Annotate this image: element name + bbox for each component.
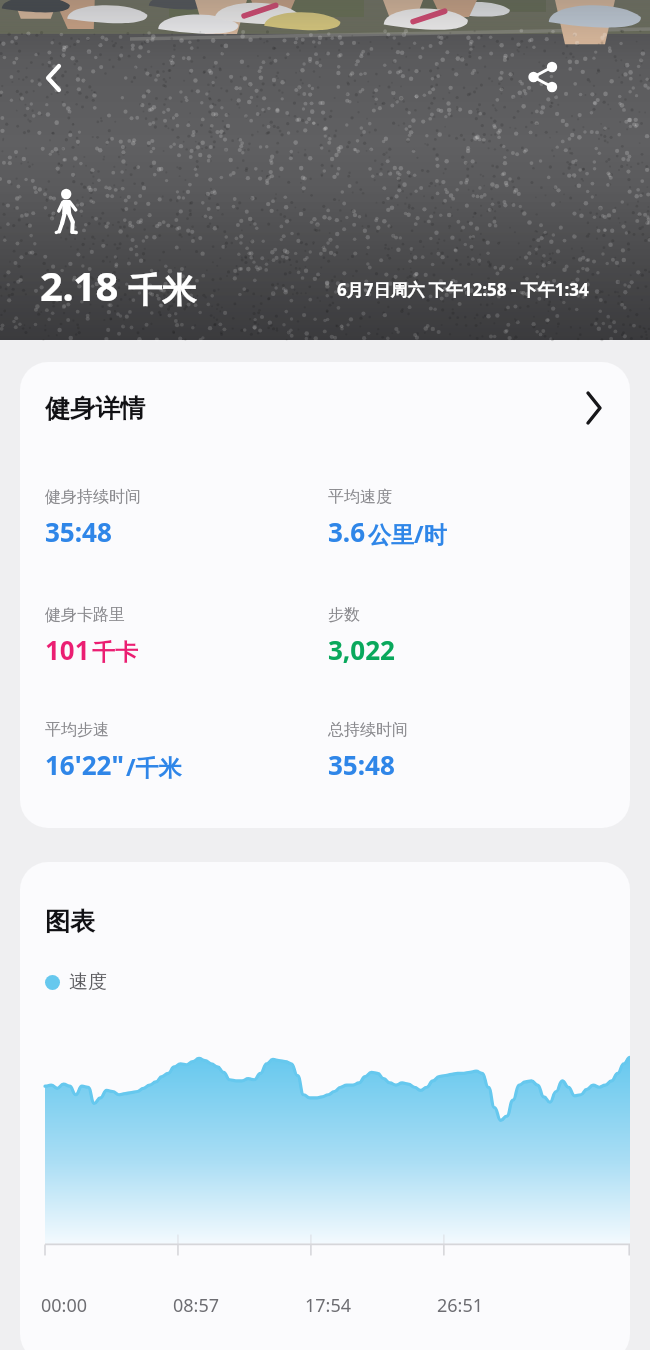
staticText: 总持续时间 <box>328 720 408 740</box>
staticText: 35:48 <box>45 514 112 549</box>
staticText: 26:51 <box>437 1293 484 1318</box>
staticText: 图表 <box>45 906 95 937</box>
staticText: 健身详情 <box>45 393 145 424</box>
staticText: 速度 <box>69 970 107 994</box>
staticText: 千米 <box>128 269 196 312</box>
staticText: 3.6 <box>328 514 366 549</box>
staticText: 健身卡路里 <box>45 605 125 625</box>
staticText: 千卡 <box>92 638 138 667</box>
staticText: 步数 <box>328 605 360 625</box>
staticText: /千米 <box>126 751 182 782</box>
staticText: 3,022 <box>328 632 395 667</box>
staticText: 17:54 <box>305 1293 352 1318</box>
button[interactable]: Share <box>517 51 569 103</box>
staticText: 16'22" <box>45 747 124 782</box>
staticText: 健身持续时间 <box>45 487 141 507</box>
staticText: 08:57 <box>173 1293 220 1318</box>
staticText: 平均步速 <box>45 720 109 740</box>
staticText: 2.18 <box>40 258 118 312</box>
staticText: 00:00 <box>41 1293 88 1318</box>
button[interactable]: 健身详情 <box>20 362 630 454</box>
button[interactable]: Back <box>28 52 80 104</box>
staticText: 101 <box>45 632 90 667</box>
staticText: 35:48 <box>328 747 395 782</box>
staticText: 公里/时 <box>368 518 447 549</box>
staticText: 平均速度 <box>328 487 392 507</box>
staticText: 6月7日周六 下午12:58 - 下午1:34 <box>337 278 589 301</box>
